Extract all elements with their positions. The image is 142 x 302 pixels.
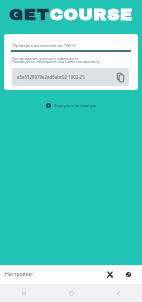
staticText: Пожалуйста, передайте код ниже специалис… [12, 59, 101, 64]
staticText: Вернуться на главную [54, 103, 96, 108]
button[interactable]: Вернуться на главную [0, 99, 142, 111]
staticText: e5e5528979e2ed6abc02 1002-25 [17, 74, 111, 80]
staticText: COURSE [50, 5, 133, 23]
button[interactable]: Инструменты [104, 269, 115, 280]
staticText: GET [9, 5, 50, 23]
button[interactable]: Home [48, 284, 95, 302]
button[interactable]: Выбор языка [123, 269, 134, 280]
staticText: Тестирование успешно завершено. [12, 56, 79, 61]
staticText: Настройки: [5, 271, 34, 278]
staticText: Проверка выполнена на 100 % [13, 43, 76, 49]
button[interactable]: Копировать код [111, 68, 129, 86]
button[interactable]: Recent apps [0, 284, 48, 302]
